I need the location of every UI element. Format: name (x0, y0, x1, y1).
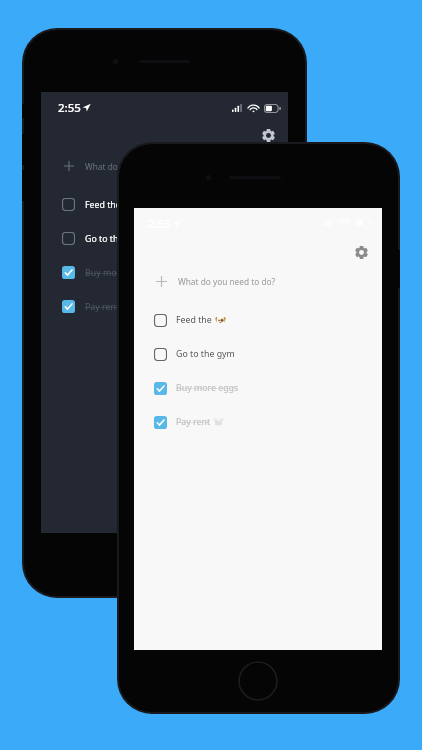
button[interactable]: Pay rent (154, 411, 364, 433)
button[interactable]: Buy more eggs (154, 377, 364, 399)
staticText: What do you need to do? (85, 161, 183, 172)
staticText: Buy more eggs (85, 267, 148, 279)
button[interactable]: Go to the gym (62, 227, 272, 250)
button[interactable]: Buy more eggs (62, 261, 272, 284)
staticText: What do you need to do? (178, 276, 276, 287)
button[interactable]: Feed the (62, 193, 272, 216)
staticText: Pay rent (176, 416, 211, 428)
button[interactable]: What do you need to do? (64, 155, 264, 177)
staticText: Buy more eggs (176, 382, 239, 394)
staticText: Feed the (176, 314, 212, 326)
button[interactable]: Pay rent (62, 295, 272, 318)
button[interactable]: What do you need to do? (156, 270, 356, 293)
staticText: 2:55 (58, 100, 81, 114)
staticText: Go to the gym (176, 348, 235, 360)
staticText: Pay rent (85, 301, 120, 313)
staticText: Go to the gym (85, 233, 144, 245)
button[interactable]: Settings (257, 124, 279, 146)
button[interactable]: Home (238, 661, 278, 701)
button[interactable]: Settings (350, 241, 372, 263)
button[interactable]: Go to the gym (154, 343, 364, 365)
button[interactable]: Feed the (154, 309, 364, 331)
staticText: Feed the (85, 199, 121, 211)
